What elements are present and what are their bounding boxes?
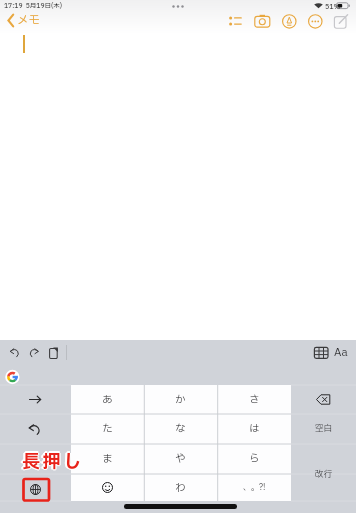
- button[interactable]: さ: [218, 385, 291, 414]
- staticText: た: [102, 421, 113, 437]
- staticText: か: [175, 392, 186, 408]
- button[interactable]: [46, 345, 61, 361]
- staticText: 長押し: [20, 449, 82, 476]
- staticText: 改行: [315, 468, 333, 481]
- staticText: 17:19 5月19日(木): [4, 1, 63, 11]
- staticText: 長押し: [22, 448, 84, 475]
- staticText: メモ: [17, 12, 40, 29]
- button[interactable]: [332, 12, 352, 30]
- button[interactable]: [226, 12, 245, 30]
- staticText: ま: [102, 451, 113, 467]
- staticText: ら: [249, 451, 260, 467]
- button[interactable]: 空白: [291, 414, 356, 443]
- staticText: 長押し: [22, 449, 84, 476]
- button[interactable]: [0, 414, 71, 444]
- button[interactable]: メモ: [4, 11, 46, 30]
- button[interactable]: や: [144, 444, 217, 474]
- button[interactable]: [7, 346, 22, 361]
- staticText: や: [175, 451, 186, 467]
- button[interactable]: は: [218, 414, 291, 444]
- staticText: あ: [102, 392, 113, 408]
- button[interactable]: [253, 12, 272, 30]
- button[interactable]: か: [144, 385, 217, 414]
- staticText: 長押し: [23, 449, 85, 476]
- staticText: な: [175, 421, 186, 437]
- staticText: 、。?!: [243, 482, 266, 494]
- button[interactable]: あ: [71, 385, 144, 414]
- button[interactable]: Aa: [332, 344, 350, 361]
- button[interactable]: た: [71, 414, 144, 444]
- staticText: 長押し: [21, 449, 83, 476]
- button[interactable]: [306, 12, 325, 30]
- button[interactable]: [280, 12, 299, 30]
- staticText: 長押し: [22, 450, 84, 477]
- button[interactable]: [0, 444, 71, 474]
- button[interactable]: [291, 385, 356, 414]
- staticText: 51%: [325, 2, 341, 12]
- staticText: さ: [249, 392, 260, 408]
- button[interactable]: 改行: [291, 444, 356, 501]
- staticText: は: [249, 421, 260, 437]
- button[interactable]: [27, 346, 42, 361]
- button[interactable]: 、。?!: [218, 474, 291, 501]
- button[interactable]: [312, 344, 330, 361]
- button[interactable]: [71, 474, 144, 501]
- staticText: 長押し: [22, 447, 84, 474]
- button[interactable]: ま: [71, 444, 144, 474]
- button[interactable]: [0, 474, 71, 501]
- staticText: わ: [175, 480, 186, 496]
- button[interactable]: な: [144, 414, 217, 444]
- staticText: Aa: [334, 344, 348, 361]
- button[interactable]: わ: [144, 474, 217, 501]
- staticText: 長押し: [21, 448, 83, 475]
- button[interactable]: ら: [218, 444, 291, 474]
- staticText: 空白: [315, 422, 333, 435]
- staticText: 長押し: [22, 449, 84, 476]
- button[interactable]: [0, 385, 71, 414]
